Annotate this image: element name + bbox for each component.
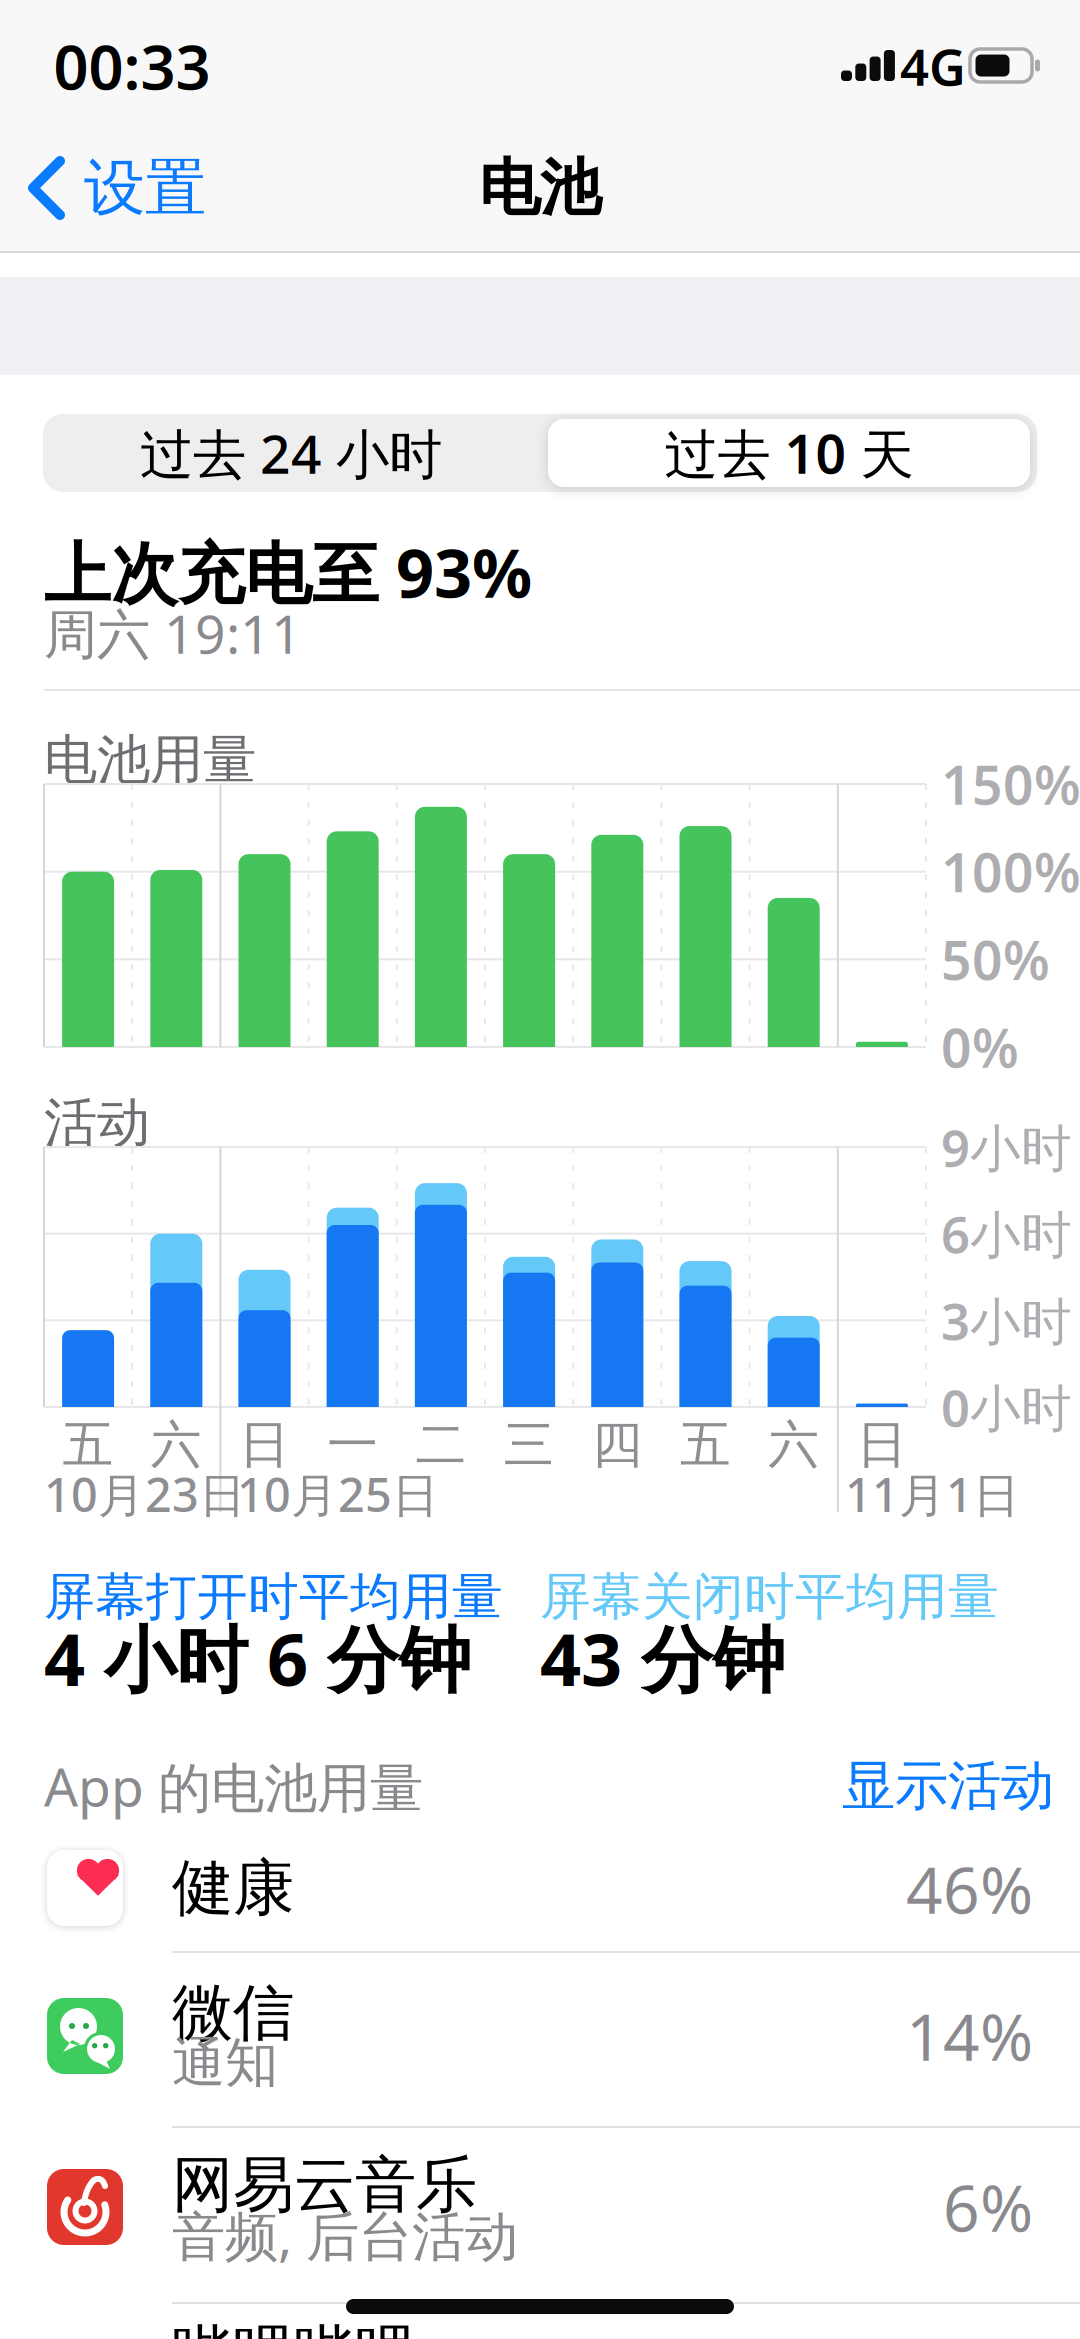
button[interactable]: 网易云音乐 [0, 2128, 1080, 2304]
staticText: 五 [680, 1414, 731, 1476]
staticText: 0% [941, 1012, 1019, 1082]
staticText: 11月1日 [845, 1463, 1020, 1525]
staticText: 43 分钟 [540, 1610, 785, 1706]
staticText: 上次充电至 93% [44, 528, 532, 616]
staticText: 日 [856, 1414, 907, 1476]
staticText: 一 [327, 1414, 378, 1476]
staticText: 10月25日 [237, 1463, 439, 1525]
button[interactable]: 过去 10 天 [548, 418, 1030, 488]
staticText: 微信 [172, 1975, 294, 2051]
button[interactable]: 设置 [13, 143, 233, 233]
button[interactable]: 微信 [0, 1953, 1080, 2128]
staticText: 四 [592, 1414, 643, 1476]
staticText: 50% [941, 924, 1050, 995]
staticText: 6% [943, 2164, 1033, 2249]
staticText: 健康 [172, 1850, 294, 1926]
staticText: 10月23日 [44, 1463, 246, 1525]
staticText: 活动 [44, 1090, 150, 1156]
staticText: 电池用量 [44, 727, 256, 793]
staticText: 五 [63, 1414, 114, 1476]
button[interactable]: 显示活动 [842, 1753, 1054, 1819]
staticText: 六 [151, 1414, 202, 1476]
staticText: 4G [900, 32, 966, 100]
staticText: 14% [906, 1993, 1033, 2078]
staticText: 00:33 [53, 25, 210, 107]
staticText: 设置 [84, 150, 206, 226]
staticText: 哔哩哔哩 [172, 2316, 416, 2339]
staticText: 电池 [479, 150, 601, 226]
staticText: 6小时 [941, 1200, 1072, 1267]
staticText: 4 小时 6 分钟 [44, 1610, 471, 1706]
staticText: 46% [906, 1846, 1033, 1931]
staticText: 0小时 [941, 1373, 1072, 1441]
staticText: 三 [504, 1414, 555, 1476]
staticText: 9小时 [941, 1113, 1072, 1181]
staticText: 100% [941, 836, 1080, 907]
staticText: 屏幕打开时平均用量 [44, 1566, 503, 1628]
staticText: 日 [239, 1414, 290, 1476]
staticText: 周六 19:11 [44, 598, 302, 668]
staticText: 过去 24 小时 [140, 418, 442, 488]
staticText: 过去 10 天 [664, 418, 913, 488]
staticText: 150% [941, 749, 1080, 819]
staticText: 屏幕关闭时平均用量 [540, 1566, 999, 1628]
staticText: 3小时 [941, 1287, 1072, 1354]
staticText: 二 [415, 1414, 466, 1476]
staticText: 显示活动 [842, 1753, 1054, 1819]
staticText: 网易云音乐 [172, 2147, 477, 2223]
staticText: 音频, 后台活动 [172, 2200, 518, 2270]
staticText: 通知 [172, 2030, 278, 2096]
staticText: 六 [768, 1414, 819, 1476]
button[interactable]: 过去 24 小时 [51, 414, 531, 492]
staticText: App 的电池用量 [44, 1750, 423, 1822]
button[interactable]: 健康 [0, 1815, 1080, 1953]
